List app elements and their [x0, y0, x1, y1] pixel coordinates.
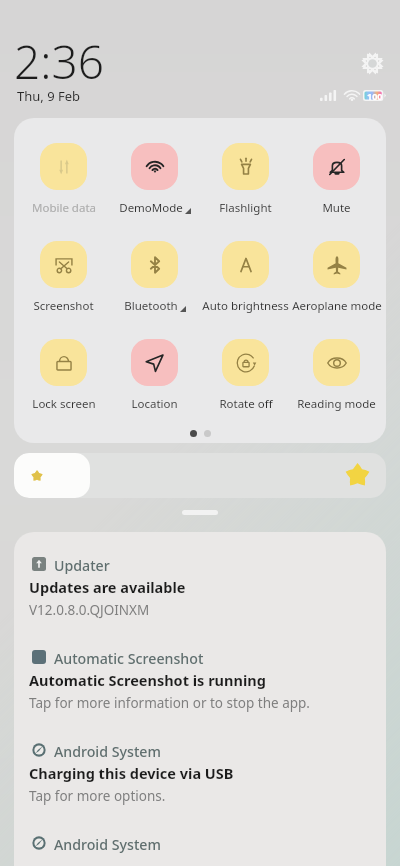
button[interactable]: Lock screen [18, 339, 109, 437]
staticText: Rotate off [219, 396, 273, 412]
staticText: 2:36 [14, 30, 105, 93]
staticText: Updater [54, 556, 110, 575]
button[interactable]: Bluetooth [109, 241, 200, 339]
staticText: Bluetooth [124, 298, 178, 314]
button[interactable]: Settings [361, 52, 384, 75]
button[interactable]: Auto brightness [200, 241, 291, 339]
button[interactable]: Android System [14, 811, 386, 866]
staticText: Charging this device via USB [29, 763, 234, 783]
staticText: 100 [367, 90, 383, 101]
button[interactable]: Brightness [14, 453, 386, 498]
staticText: Updates are available [29, 577, 186, 597]
staticText: DemoMode [119, 200, 183, 216]
staticText: Automatic Screenshot is running [29, 670, 266, 690]
button[interactable]: DemoMode [109, 143, 200, 241]
button[interactable]: Reading mode [291, 339, 382, 437]
button[interactable]: Screenshot [18, 241, 109, 339]
staticText: Screenshot [33, 298, 94, 314]
staticText: Lock screen [32, 396, 96, 412]
staticText: Android System [54, 835, 161, 854]
button[interactable]: Flashlight [200, 143, 291, 241]
button[interactable]: Location [109, 339, 200, 437]
button[interactable]: Aeroplane mode [291, 241, 382, 339]
staticText: Mute [322, 200, 351, 216]
staticText: Reading mode [297, 396, 376, 412]
button[interactable]: Updater [14, 532, 386, 625]
button[interactable]: Mobile data [18, 143, 109, 241]
staticText: Aeroplane mode [292, 298, 382, 314]
staticText: V12.0.8.0.QJOINXM [29, 601, 150, 619]
staticText: Location [131, 396, 178, 412]
staticText: Thu, 9 Feb [17, 87, 81, 105]
button[interactable]: Automatic Screenshot [14, 625, 386, 718]
staticText: Tap for more options. [29, 787, 166, 805]
button[interactable]: Android System [14, 718, 386, 811]
button[interactable]: Rotate off [200, 339, 291, 437]
staticText: Flashlight [219, 200, 272, 216]
staticText: Mobile data [32, 200, 96, 216]
staticText: Android System [54, 742, 161, 761]
staticText: Automatic Screenshot [54, 649, 204, 668]
staticText: Tap for more information or to stop the … [29, 694, 310, 712]
button[interactable]: Mute [291, 143, 382, 241]
staticText: Auto brightness [202, 298, 289, 314]
